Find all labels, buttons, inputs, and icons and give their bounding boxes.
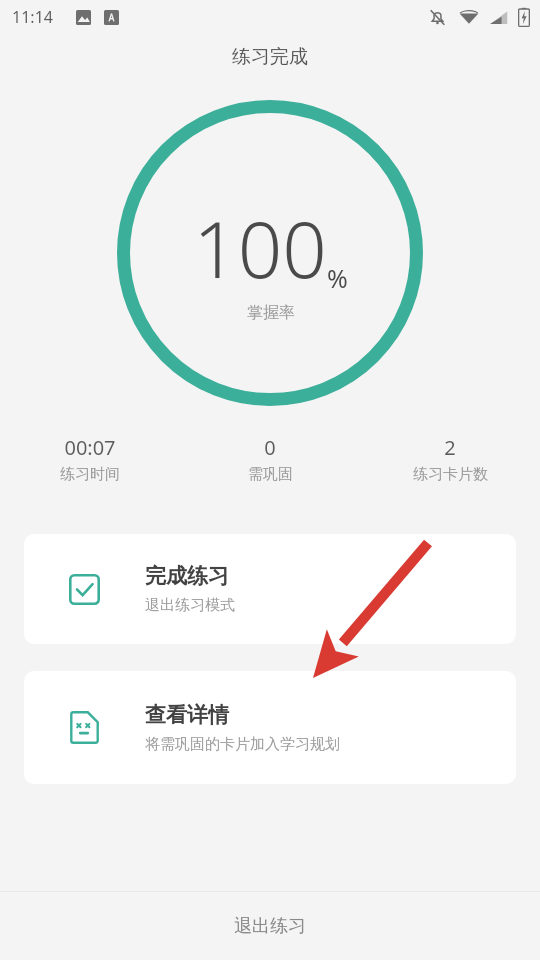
staticText: 100 — [193, 195, 327, 301]
button[interactable]: 0 — [180, 434, 360, 484]
staticText: 退出练习 — [234, 915, 306, 938]
other: Notifications off — [428, 8, 447, 27]
staticText: 退出练习模式 — [145, 596, 235, 615]
staticText: % — [327, 261, 348, 295]
staticText: 练习完成 — [232, 45, 308, 69]
staticText: 完成练习 — [145, 563, 229, 589]
other: 查看详情 — [68, 711, 101, 744]
staticText: 11:14 — [12, 6, 53, 28]
staticText: 将需巩固的卡片加入学习规划 — [145, 735, 340, 754]
other: Battery charging — [518, 7, 530, 27]
staticText: 查看详情 — [145, 702, 229, 728]
button[interactable]: 查看详情 — [24, 671, 516, 784]
staticText: 2 — [444, 434, 456, 461]
staticText: 0 — [264, 434, 276, 461]
other: Wi-Fi — [459, 7, 479, 27]
staticText: 掌握率 — [247, 303, 295, 323]
other: 完成练习 — [69, 574, 100, 605]
staticText: 练习时间 — [60, 465, 120, 484]
staticText: 00:07 — [64, 434, 116, 461]
button[interactable]: 00:07 — [0, 434, 180, 484]
button[interactable]: 退出练习 — [0, 892, 540, 960]
button[interactable]: 完成练习 — [24, 534, 516, 644]
staticText: 练习卡片数 — [413, 465, 488, 484]
other: Cellular signal — [489, 8, 508, 27]
staticText: 需巩固 — [248, 465, 293, 484]
button[interactable]: 2 — [360, 434, 540, 484]
